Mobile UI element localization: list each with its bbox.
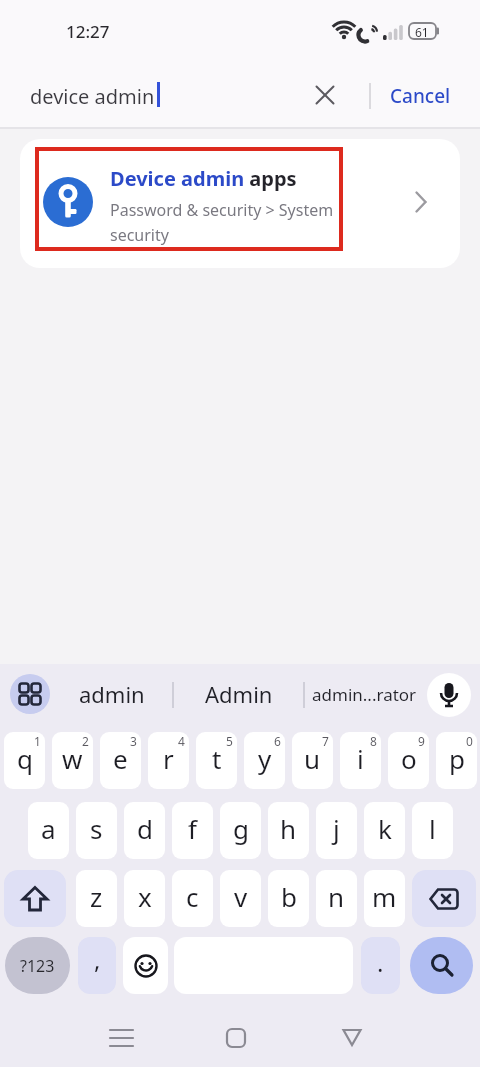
staticText: Admin: [205, 679, 273, 709]
staticText: l: [429, 811, 436, 846]
button[interactable]: e: [100, 732, 141, 789]
button[interactable]: z: [76, 870, 117, 927]
button[interactable]: a: [28, 802, 69, 859]
button[interactable]: Admin: [178, 672, 300, 716]
staticText: x: [138, 879, 152, 914]
staticText: 61: [415, 24, 429, 40]
staticText: 1: [34, 733, 41, 749]
staticText: c: [186, 879, 199, 914]
button[interactable]: j: [316, 802, 357, 859]
staticText: w: [62, 741, 83, 776]
button[interactable]: p: [436, 732, 477, 789]
button[interactable]: ?123: [5, 937, 70, 994]
button[interactable]: q: [4, 732, 45, 789]
staticText: 8: [370, 733, 377, 749]
button[interactable]: l: [412, 802, 453, 859]
button[interactable]: [410, 937, 473, 994]
staticText: f: [188, 811, 197, 846]
staticText: g: [233, 811, 249, 846]
button[interactable]: b: [268, 870, 309, 927]
staticText: b: [281, 879, 297, 914]
button[interactable]: s: [76, 802, 117, 859]
staticText: m: [372, 879, 397, 914]
staticText: 5: [226, 733, 233, 749]
button[interactable]: [315, 85, 335, 105]
staticText: v: [234, 879, 248, 914]
button[interactable]: [342, 1028, 362, 1048]
staticText: ?123: [20, 955, 55, 977]
staticText: 7: [322, 733, 329, 749]
button[interactable]: o: [388, 732, 429, 789]
staticText: .: [377, 946, 384, 979]
button[interactable]: c: [172, 870, 213, 927]
button[interactable]: g: [220, 802, 261, 859]
button[interactable]: Device admin apps: [20, 139, 460, 268]
staticText: i: [357, 741, 364, 776]
staticText: j: [333, 811, 340, 846]
button[interactable]: k: [364, 802, 405, 859]
staticText: 4: [178, 733, 185, 749]
staticText: q: [17, 741, 33, 776]
staticText: n: [328, 879, 345, 914]
button[interactable]: r: [148, 732, 189, 789]
staticText: k: [378, 811, 392, 846]
button[interactable]: Cancel: [382, 74, 458, 118]
button[interactable]: d: [124, 802, 165, 859]
staticText: Password & security > System security: [110, 199, 334, 245]
button[interactable]: h: [268, 802, 309, 859]
button[interactable]: [10, 674, 50, 714]
staticText: ,: [94, 943, 101, 976]
staticText: 9: [418, 733, 425, 749]
button[interactable]: t: [196, 732, 237, 789]
button[interactable]: [110, 1028, 134, 1048]
button[interactable]: [123, 937, 168, 994]
button[interactable]: w: [52, 732, 93, 789]
staticText: Device admin apps: [110, 165, 297, 192]
staticText: h: [280, 811, 297, 846]
staticText: z: [90, 879, 103, 914]
button[interactable]: i: [340, 732, 381, 789]
staticText: 6: [274, 733, 281, 749]
button[interactable]: ,: [78, 937, 116, 994]
button[interactable]: y: [244, 732, 285, 789]
staticText: r: [163, 741, 174, 776]
staticText: admin: [79, 679, 145, 709]
button[interactable]: admin...rator: [306, 672, 422, 716]
staticText: Cancel: [390, 83, 451, 109]
staticText: 3: [130, 733, 137, 749]
staticText: p: [449, 741, 465, 776]
staticText: a: [41, 811, 56, 846]
button[interactable]: n: [316, 870, 357, 927]
staticText: 0: [466, 733, 473, 749]
staticText: t: [212, 741, 222, 776]
button[interactable]: u: [292, 732, 333, 789]
button[interactable]: f: [172, 802, 213, 859]
button[interactable]: [412, 870, 476, 927]
button[interactable]: [4, 870, 66, 927]
button[interactable]: [226, 1028, 246, 1048]
staticText: 12:27: [66, 20, 110, 43]
button[interactable]: admin: [56, 672, 168, 716]
button[interactable]: m: [364, 870, 405, 927]
staticText: s: [90, 811, 103, 846]
button[interactable]: .: [361, 937, 400, 994]
button[interactable]: v: [220, 870, 261, 927]
staticText: admin...rator: [312, 683, 417, 706]
staticText: e: [113, 741, 128, 776]
staticText: u: [304, 741, 321, 776]
staticText: d: [137, 811, 153, 846]
staticText: 2: [82, 733, 89, 749]
staticText: y: [258, 741, 272, 776]
button[interactable]: x: [124, 870, 165, 927]
button[interactable]: [427, 673, 471, 717]
staticText: device admin: [30, 83, 155, 110]
button[interactable]: device admin: [0, 64, 480, 127]
staticText: o: [401, 741, 417, 776]
